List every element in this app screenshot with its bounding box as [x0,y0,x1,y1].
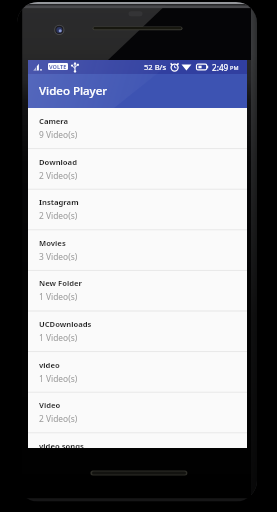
staticText: Instagram [39,197,79,207]
button[interactable]: Video [28,392,247,433]
button[interactable]: Instagram [28,189,247,230]
staticText: VOLTE [49,63,67,70]
staticText: 3 Video(s) [39,251,78,262]
staticText: 52 B/s [144,62,167,72]
button[interactable]: Download [28,149,247,190]
staticText: 1 Video(s) [39,332,78,343]
button[interactable]: video [28,352,247,393]
staticText: 1 Video(s) [39,373,78,384]
staticText: Movies [39,238,66,248]
staticText: Video [39,400,61,410]
staticText: New Folder [39,278,82,288]
button[interactable]: Video Player [28,74,247,108]
button[interactable]: UCDownloads [28,311,247,352]
staticText: 2 Video(s) [39,170,78,181]
staticText: 2 Video(s) [39,413,78,424]
staticText: 9 Video(s) [39,129,78,140]
staticText: 2 Video(s) [39,210,78,221]
staticText: video songs [39,441,84,448]
button[interactable]: New Folder [28,270,247,311]
button[interactable]: video songs [28,433,247,448]
button[interactable]: Movies [28,230,247,271]
staticText: PM [230,64,239,72]
staticText: video [39,360,60,370]
staticText: Download [39,157,77,167]
staticText: Video Player [39,83,108,99]
staticText: 1 Video(s) [39,291,78,302]
staticText: 2:49 [212,62,229,73]
button[interactable]: Camera [28,108,247,149]
staticText: UCDownloads [39,319,92,329]
staticText: Camera [39,116,69,126]
